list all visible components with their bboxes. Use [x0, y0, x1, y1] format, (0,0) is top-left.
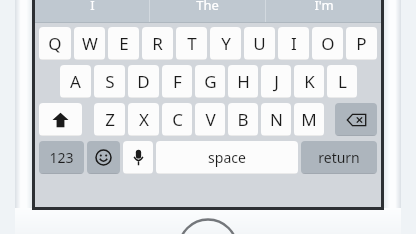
button[interactable]: X — [128, 103, 159, 136]
staticText: 123 — [49, 148, 74, 167]
staticText: T — [187, 32, 197, 55]
button[interactable]: J — [261, 65, 291, 98]
staticText: return — [318, 148, 360, 167]
staticText: B — [237, 108, 249, 131]
button[interactable]: M — [294, 103, 324, 136]
staticText: N — [270, 108, 283, 131]
staticText: A — [70, 70, 81, 93]
button[interactable]: U — [244, 27, 275, 60]
button[interactable]: space — [156, 141, 298, 174]
staticText: M — [301, 108, 317, 131]
staticText: V — [205, 108, 216, 131]
button[interactable]: T — [176, 27, 207, 60]
staticText: E — [119, 32, 129, 55]
staticText: S — [105, 70, 115, 93]
staticText: The — [196, 0, 219, 14]
button[interactable]: Shift — [39, 103, 82, 136]
staticText: I — [291, 32, 297, 55]
staticText: D — [137, 70, 150, 93]
button[interactable]: G — [195, 65, 225, 98]
staticText: H — [237, 70, 250, 93]
button[interactable]: E — [108, 27, 139, 60]
staticText: W — [82, 32, 98, 55]
button[interactable]: S — [94, 65, 125, 98]
button[interactable]: Q — [39, 27, 71, 60]
staticText: G — [204, 70, 217, 93]
button[interactable]: Emoji keyboard — [87, 141, 120, 174]
button[interactable]: D — [128, 65, 159, 98]
button[interactable]: Z — [94, 103, 125, 136]
staticText: R — [152, 32, 163, 55]
staticText: C — [172, 108, 183, 131]
staticText: O — [321, 32, 335, 55]
button[interactable]: C — [162, 103, 192, 136]
button[interactable]: B — [228, 103, 258, 136]
button[interactable]: return — [301, 141, 377, 174]
staticText: I — [90, 0, 95, 14]
button[interactable]: Dictation — [123, 141, 153, 174]
staticText: K — [304, 70, 315, 93]
button[interactable]: N — [261, 103, 291, 136]
staticText: I'm — [314, 0, 334, 14]
staticText: Y — [221, 32, 231, 55]
button[interactable]: O — [312, 27, 343, 60]
staticText: Q — [48, 32, 62, 55]
staticText: F — [173, 70, 182, 93]
button[interactable]: 123 — [39, 141, 84, 174]
button[interactable]: I — [278, 27, 309, 60]
staticText: Z — [105, 108, 115, 131]
button[interactable]: P — [346, 27, 377, 60]
button[interactable]: A — [60, 65, 91, 98]
button[interactable]: R — [142, 27, 173, 60]
button[interactable]: V — [195, 103, 225, 136]
button[interactable]: F — [162, 65, 192, 98]
button[interactable]: Y — [210, 27, 241, 60]
staticText: X — [139, 108, 149, 131]
staticText: J — [274, 70, 279, 93]
button[interactable]: Delete — [335, 103, 377, 136]
button[interactable]: I'm — [266, 0, 381, 23]
button[interactable]: H — [228, 65, 258, 98]
staticText: P — [356, 32, 367, 55]
button[interactable]: L — [327, 65, 357, 98]
staticText: space — [208, 148, 246, 167]
staticText: U — [253, 32, 266, 55]
button[interactable]: I — [35, 0, 149, 23]
button[interactable]: W — [74, 27, 105, 60]
button[interactable]: K — [294, 65, 324, 98]
staticText: L — [338, 70, 347, 93]
button[interactable]: The — [150, 0, 265, 23]
